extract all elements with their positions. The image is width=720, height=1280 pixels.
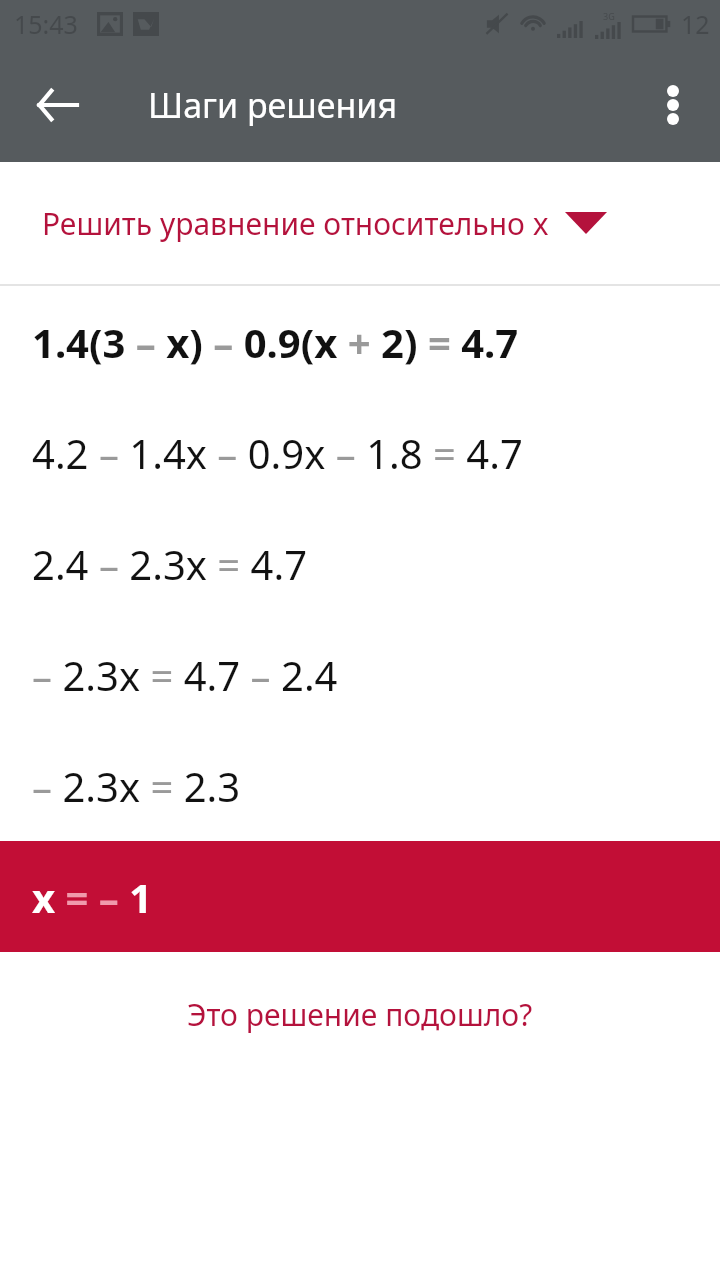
button[interactable]: Back bbox=[20, 68, 94, 142]
staticText: Шаги решения bbox=[148, 82, 398, 128]
staticText: 4.2 – 1.4x – 0.9x – 1.8 = 4.7 bbox=[32, 426, 523, 480]
staticText: x = – 1 bbox=[32, 870, 153, 924]
button[interactable]: Решить уравнение относительно x bbox=[0, 162, 720, 284]
button[interactable]: More options bbox=[640, 72, 706, 138]
staticText: 2.4 – 2.3x = 4.7 bbox=[32, 537, 308, 591]
staticText: – 2.3x = 2.3 bbox=[32, 759, 241, 813]
staticText: 15:43 bbox=[14, 7, 78, 41]
staticText: Решить уравнение относительно x bbox=[42, 203, 549, 244]
button[interactable]: x = – 1 bbox=[0, 841, 720, 952]
button[interactable]: Это решение подошло? bbox=[167, 980, 553, 1049]
staticText: 12 bbox=[681, 7, 710, 41]
staticText: – 2.3x = 4.7 – 2.4 bbox=[32, 648, 338, 702]
staticText: 3G bbox=[603, 10, 615, 22]
staticText: 1.4(3 – x) – 0.9(x + 2) = 4.7 bbox=[32, 315, 519, 369]
